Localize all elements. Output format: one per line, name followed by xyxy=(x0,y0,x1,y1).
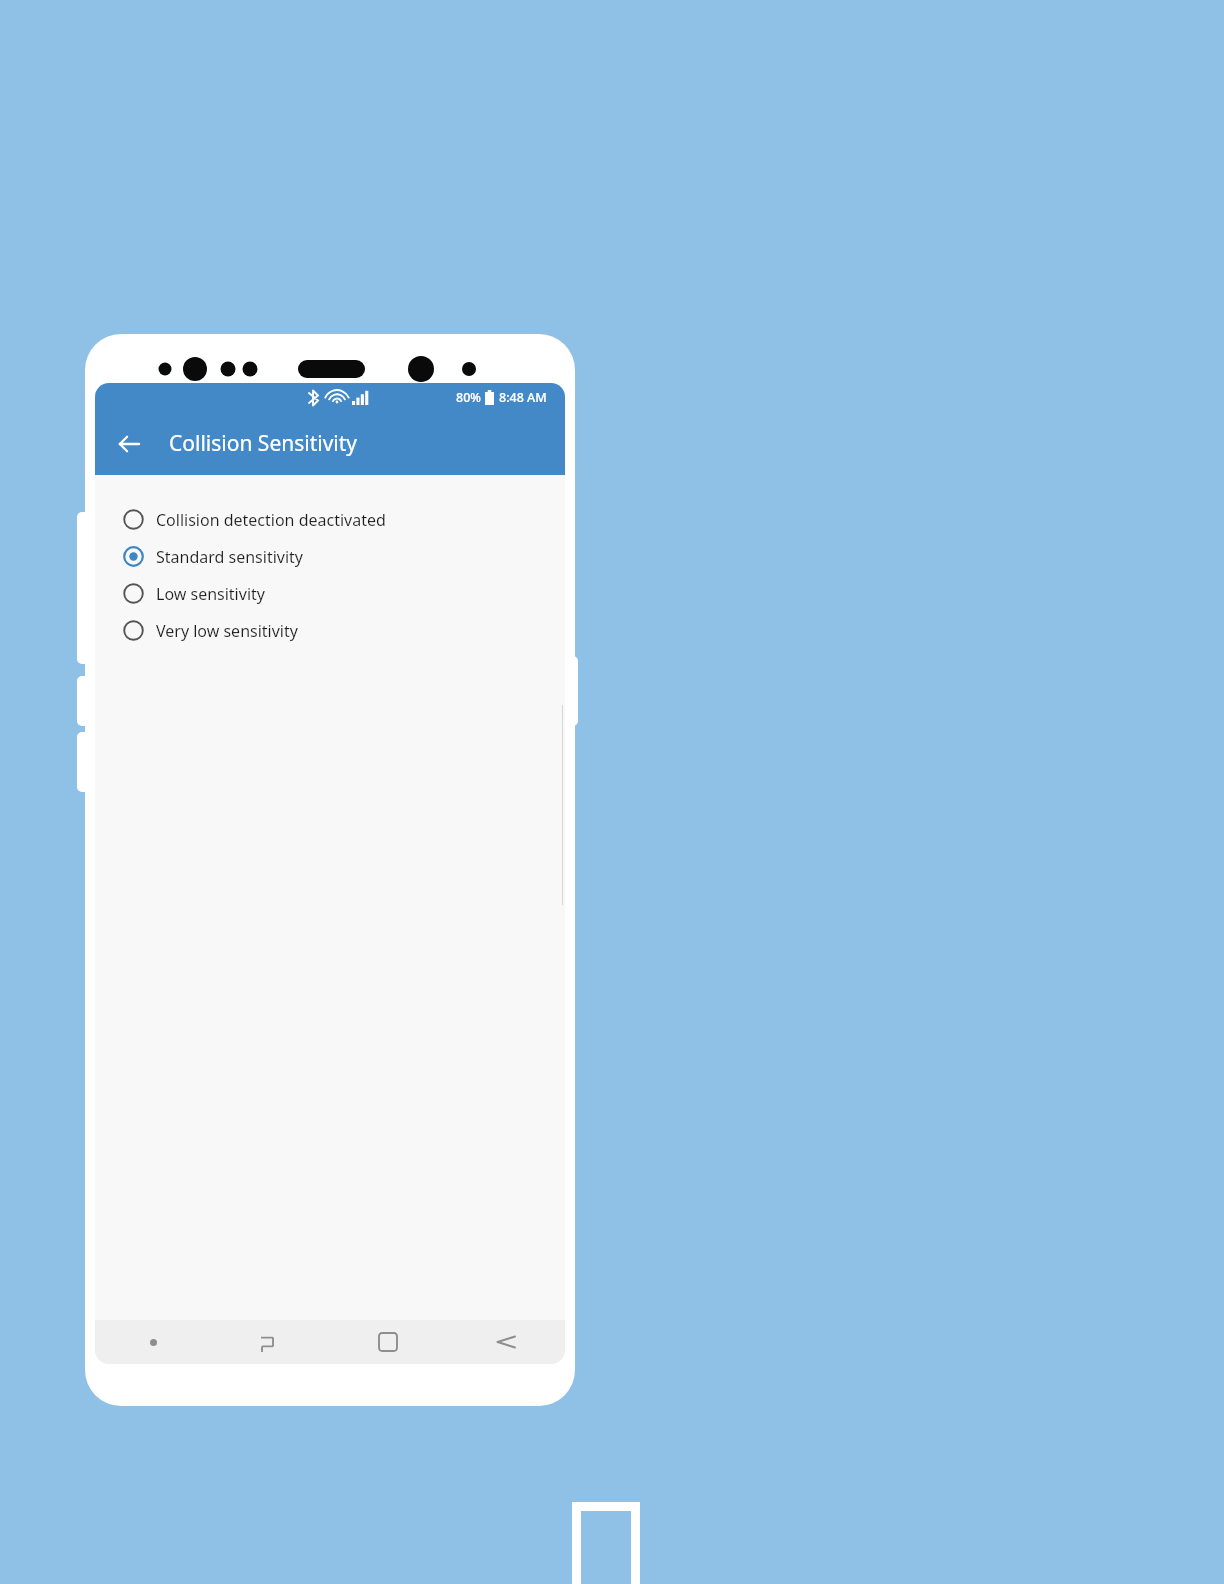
staticText: Standard sensitivity xyxy=(156,546,303,568)
button[interactable]: Low sensitivity xyxy=(95,575,565,612)
button[interactable]: Back xyxy=(447,1320,565,1364)
button[interactable]: Back xyxy=(105,420,153,468)
staticText: 80% xyxy=(456,389,481,406)
staticText: Collision Sensitivity xyxy=(169,429,358,458)
staticText: Very low sensitivity xyxy=(156,620,298,642)
button[interactable]: Very low sensitivity xyxy=(95,612,565,649)
staticText: Collision detection deactivated xyxy=(156,509,386,531)
staticText: 8:48 AM xyxy=(499,389,547,406)
button[interactable]: Collision detection deactivated xyxy=(95,501,565,538)
button[interactable]: Recents xyxy=(212,1320,329,1364)
button[interactable]: Menu xyxy=(95,1320,212,1364)
button[interactable]: Home xyxy=(329,1320,447,1364)
button[interactable]: Standard sensitivity xyxy=(95,538,565,575)
staticText: Low sensitivity xyxy=(156,583,265,605)
